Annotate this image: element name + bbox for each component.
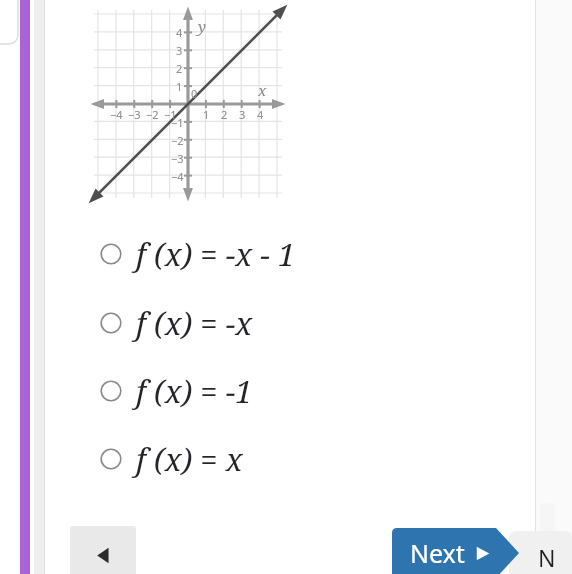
staticText: 4 [257,107,264,122]
staticText: 1 [203,107,210,122]
button[interactable]: f (x) = x [100,433,430,485]
staticText: f (x) = −x [136,302,253,344]
staticText: −4 [110,107,123,122]
staticText: f (x) = −1 [136,370,253,412]
staticText: 2 [176,61,183,76]
staticText: x [258,80,267,100]
staticText: Next [410,536,465,570]
staticText: y [198,16,206,36]
staticText: 0 [191,86,198,101]
staticText: −3 [171,151,184,166]
staticText: N [538,542,556,573]
staticText: 3 [176,43,183,58]
staticText: 2 [221,107,228,122]
button[interactable]: Next [392,528,519,574]
staticText: −2 [171,133,184,148]
button[interactable]: f (x) = −1 [100,365,430,417]
staticText: −1 [171,115,184,130]
staticText: f (x) = −x − 1 [136,233,296,275]
staticText: f (x) = x [136,438,243,480]
staticText: −4 [171,169,184,184]
button[interactable]: N [509,531,572,574]
staticText: −3 [128,107,141,122]
staticText: −2 [146,107,159,122]
staticText: −1 [164,107,177,122]
staticText: 4 [176,25,183,40]
button[interactable]: f (x) = −x − 1 [100,228,430,280]
staticText: 3 [239,107,246,122]
button[interactable]: Previous [70,526,136,574]
button[interactable]: f (x) = −x [100,297,430,349]
staticText: 1 [176,79,183,94]
